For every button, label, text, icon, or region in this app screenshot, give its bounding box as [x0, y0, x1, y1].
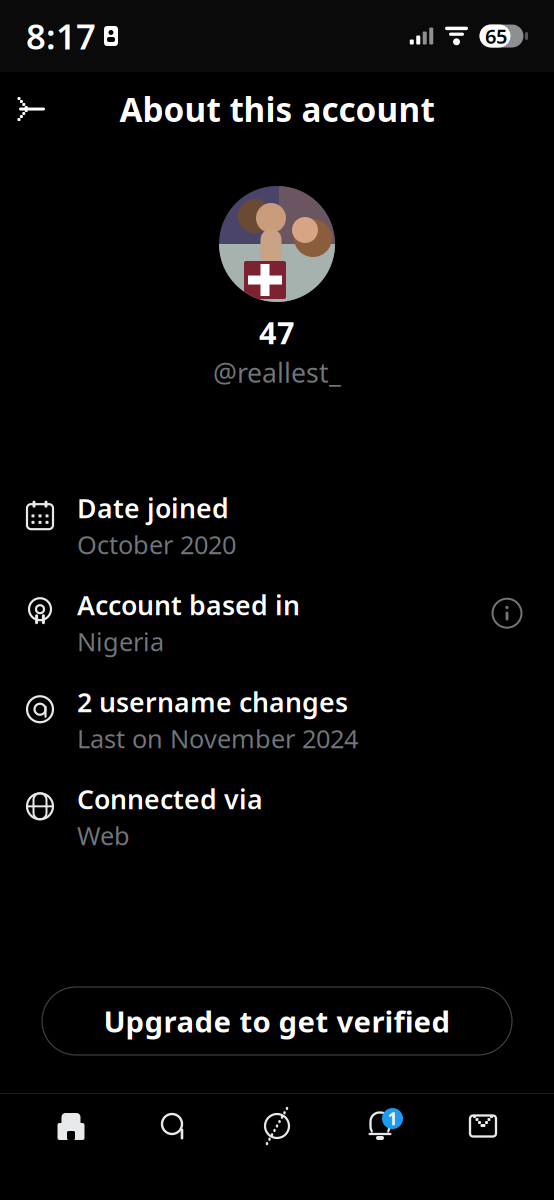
- button[interactable]: Upgrade to get verified: [42, 987, 512, 1055]
- button[interactable]: More information: [485, 591, 529, 635]
- staticText: About this account: [119, 87, 434, 131]
- button[interactable]: Messages: [447, 1098, 519, 1154]
- staticText: Last on November 2024: [77, 722, 358, 755]
- staticText: Web: [77, 819, 130, 852]
- staticText: 8:17: [26, 13, 96, 59]
- staticText: Connected via: [77, 781, 263, 817]
- button[interactable]: Notifications: [344, 1098, 416, 1154]
- button[interactable]: Home: [35, 1098, 107, 1154]
- staticText: October 2020: [77, 528, 236, 561]
- staticText: Upgrade to get verified: [103, 1001, 450, 1040]
- button[interactable]: Back: [4, 82, 58, 136]
- staticText: Date joined: [77, 490, 229, 525]
- staticText: 1: [387, 1107, 397, 1130]
- staticText: 2 username changes: [77, 684, 348, 720]
- button[interactable]: Grok: [241, 1098, 313, 1154]
- staticText: 47: [259, 312, 295, 353]
- staticText: @reallest_: [213, 355, 341, 390]
- staticText: Account based in: [77, 587, 300, 623]
- button[interactable]: Search: [138, 1098, 210, 1154]
- staticText: Nigeria: [77, 625, 164, 658]
- staticText: 65: [485, 23, 507, 49]
